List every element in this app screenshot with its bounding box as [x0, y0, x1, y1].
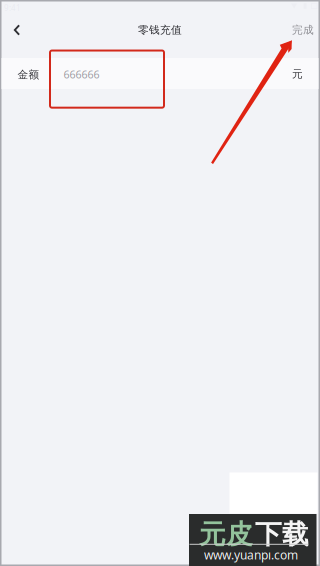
button[interactable]: 完成: [287, 16, 319, 44]
staticText: 元: [292, 67, 303, 81]
staticText: www.yuanpi.com: [204, 547, 298, 563]
staticText: 零钱充值: [138, 23, 182, 36]
staticText: 666666: [63, 67, 99, 81]
staticText: 下载: [255, 518, 309, 551]
button[interactable]: Back: [2, 15, 32, 45]
staticText: 元皮: [199, 518, 253, 551]
staticText: 金额: [17, 68, 39, 81]
staticText: 完成: [292, 23, 314, 36]
